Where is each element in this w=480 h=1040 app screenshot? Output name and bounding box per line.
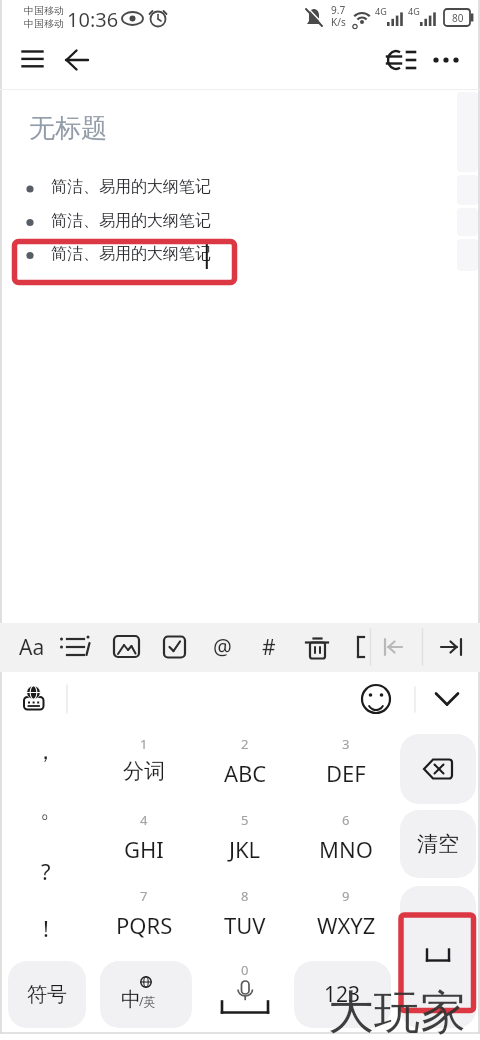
button[interactable] (14, 680, 54, 720)
button[interactable]: 7 (96, 886, 192, 956)
staticText: GHI (124, 834, 164, 864)
button[interactable] (376, 629, 410, 665)
button[interactable]: 0 (197, 961, 293, 1026)
staticText: 8 (241, 887, 249, 905)
staticText: 6 (342, 811, 350, 829)
button[interactable]: # (251, 631, 287, 663)
staticText: 9 (342, 887, 350, 905)
staticText: 7 (140, 887, 148, 905)
button[interactable] (432, 629, 472, 665)
staticText: ! (43, 913, 49, 943)
staticText: 5 (241, 811, 249, 829)
button[interactable] (58, 629, 96, 665)
staticText: 符号 (27, 982, 67, 1007)
button[interactable]: ! (26, 905, 66, 951)
button[interactable]: 4 (96, 810, 192, 880)
button[interactable]: 3 (298, 734, 394, 804)
button[interactable]: 6 (298, 810, 394, 880)
button[interactable]: 5 (197, 810, 293, 880)
staticText: 中国移动 (24, 17, 64, 30)
button[interactable] (382, 44, 420, 76)
staticText: 。 (40, 795, 63, 824)
staticText: 简洁、易用的大纲笔记 (51, 177, 211, 197)
staticText: K/s (331, 15, 346, 29)
staticText: @ (213, 633, 232, 662)
staticText: 1 (140, 735, 148, 753)
button[interactable]: ? (26, 848, 66, 894)
staticText: ? (41, 856, 51, 886)
button[interactable] (106, 629, 146, 665)
staticText: JKL (229, 834, 261, 864)
button[interactable] (428, 44, 466, 76)
staticText: 清空 (417, 831, 459, 857)
staticText: TUV (224, 910, 266, 940)
button[interactable]: 。 (31, 786, 71, 832)
button[interactable] (298, 629, 336, 665)
staticText: Aa (19, 633, 45, 662)
button[interactable] (154, 629, 194, 665)
staticText: 2 (241, 735, 249, 753)
staticText: WXYZ (317, 910, 376, 940)
staticText: 4 (140, 811, 148, 829)
button[interactable] (8, 961, 86, 1028)
button[interactable] (58, 44, 96, 76)
button[interactable]: 1 (96, 734, 192, 804)
staticText: 简洁、易用的大纲笔记 (51, 211, 211, 231)
button[interactable]: Aa (16, 631, 48, 663)
staticText: 4G (408, 5, 420, 17)
staticText: MNO (319, 834, 373, 864)
staticText: 123 (324, 980, 361, 1009)
staticText: ABC (224, 758, 267, 788)
staticText: 中 (121, 987, 141, 1012)
button[interactable] (427, 680, 467, 720)
button[interactable] (14, 44, 52, 76)
button[interactable] (100, 961, 192, 1028)
staticText: 大玩家 (328, 984, 466, 1040)
staticText: 80 (452, 11, 464, 25)
staticText: 10:36 (67, 6, 119, 33)
button[interactable] (400, 886, 476, 1028)
button[interactable] (356, 680, 396, 720)
button[interactable]: 9 (298, 886, 394, 956)
button[interactable] (400, 734, 476, 804)
staticText: 无标题 (29, 112, 107, 145)
staticText: 9.7 (331, 3, 346, 17)
staticText: ， (34, 737, 57, 766)
staticText: 分词 (123, 758, 165, 784)
staticText: 中国移动 (24, 4, 64, 17)
staticText: 简洁、易用的大纲笔记 (51, 244, 211, 264)
staticText: 4G (375, 5, 387, 17)
staticText: 0 (241, 961, 249, 979)
button[interactable]: 2 (197, 734, 293, 804)
button[interactable]: 8 (197, 886, 293, 956)
button[interactable] (400, 810, 476, 878)
staticText: # (262, 633, 276, 662)
staticText: /英 (139, 993, 156, 1009)
staticText: DEF (326, 758, 366, 788)
staticText: PQRS (116, 910, 173, 940)
button[interactable]: @ (204, 631, 240, 663)
button[interactable] (294, 961, 391, 1028)
staticText: 3 (342, 735, 350, 753)
button[interactable]: ， (25, 728, 65, 774)
